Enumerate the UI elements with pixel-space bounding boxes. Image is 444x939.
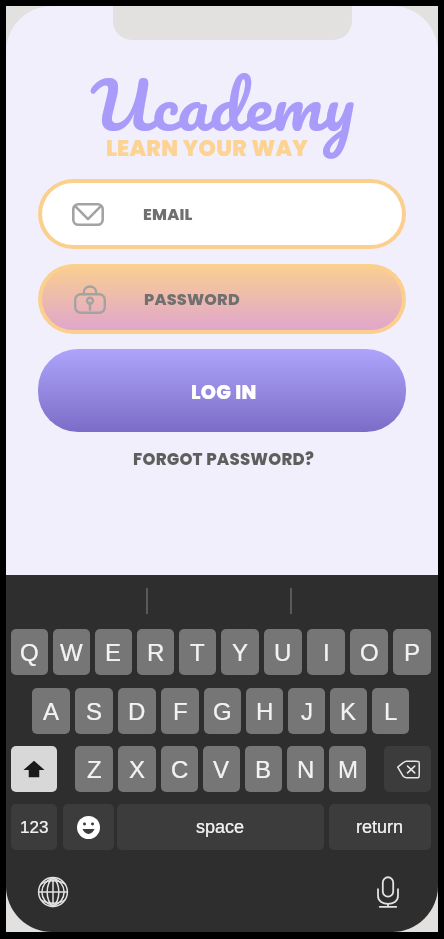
button[interactable]: I: [307, 629, 345, 675]
button[interactable]: K: [330, 688, 367, 734]
staticText: V: [213, 756, 230, 783]
staticText: C: [171, 756, 189, 783]
button[interactable]: H: [246, 688, 283, 734]
button[interactable]: O: [350, 629, 388, 675]
button[interactable]: M: [329, 746, 366, 792]
button[interactable]: U: [264, 629, 302, 675]
staticText: LEARN YOUR WAY: [106, 133, 309, 164]
staticText: G: [213, 698, 232, 725]
button[interactable]: FORGOT PASSWORD?: [8, 444, 438, 474]
staticText: L: [384, 698, 398, 725]
button[interactable]: LOG IN: [38, 349, 406, 432]
button[interactable]: P: [393, 629, 431, 675]
staticText: I: [323, 639, 330, 666]
staticText: EMAIL: [143, 203, 193, 225]
button[interactable]: Voice input: [367, 870, 409, 912]
button[interactable]: F: [161, 688, 199, 734]
staticText: F: [173, 698, 188, 725]
staticText: T: [190, 639, 205, 666]
button[interactable]: Q: [11, 629, 48, 675]
button[interactable]: Y: [221, 629, 259, 675]
staticText: R: [147, 639, 165, 666]
staticText: PASSWORD: [144, 288, 240, 310]
staticText: K: [340, 698, 357, 725]
button[interactable]: return: [329, 804, 431, 850]
staticText: return: [356, 817, 404, 837]
button[interactable]: Backspace: [384, 746, 431, 792]
staticText: M: [338, 756, 358, 783]
button[interactable]: S: [75, 688, 113, 734]
staticText: Q: [20, 639, 39, 666]
button[interactable]: V: [203, 746, 240, 792]
button[interactable]: space: [117, 804, 324, 850]
button[interactable]: G: [204, 688, 241, 734]
button[interactable]: N: [287, 746, 324, 792]
button[interactable]: R: [137, 629, 174, 675]
staticText: U: [274, 639, 292, 666]
button[interactable]: EMAIL: [42, 183, 402, 245]
staticText: Z: [87, 756, 102, 783]
button[interactable]: PASSWORD: [42, 268, 402, 330]
button[interactable]: C: [161, 746, 198, 792]
staticText: O: [360, 639, 379, 666]
button[interactable]: Change keyboard language: [32, 871, 74, 913]
button[interactable]: L: [372, 688, 409, 734]
button[interactable]: A: [32, 688, 70, 734]
staticText: H: [256, 698, 274, 725]
staticText: W: [60, 639, 83, 666]
staticText: N: [297, 756, 315, 783]
button[interactable]: J: [288, 688, 325, 734]
button[interactable]: 123: [11, 804, 57, 850]
staticText: P: [404, 639, 421, 666]
staticText: Y: [232, 639, 249, 666]
staticText: Ucademy: [91, 52, 354, 159]
button[interactable]: Shift: [11, 746, 57, 792]
button[interactable]: T: [179, 629, 216, 675]
staticText: space: [196, 817, 245, 837]
staticText: X: [129, 756, 146, 783]
button[interactable]: Z: [75, 746, 113, 792]
staticText: FORGOT PASSWORD?: [133, 448, 315, 471]
staticText: B: [255, 756, 272, 783]
button[interactable]: Emoji: [63, 804, 114, 850]
button[interactable]: E: [95, 629, 132, 675]
button[interactable]: W: [53, 629, 90, 675]
staticText: A: [43, 698, 60, 725]
staticText: 123: [20, 818, 49, 837]
staticText: D: [128, 698, 146, 725]
button[interactable]: B: [245, 746, 282, 792]
button[interactable]: X: [118, 746, 156, 792]
staticText: J: [301, 698, 313, 725]
staticText: S: [86, 698, 103, 725]
staticText: E: [105, 639, 122, 666]
staticText: LOG IN: [191, 379, 257, 406]
button[interactable]: D: [118, 688, 156, 734]
